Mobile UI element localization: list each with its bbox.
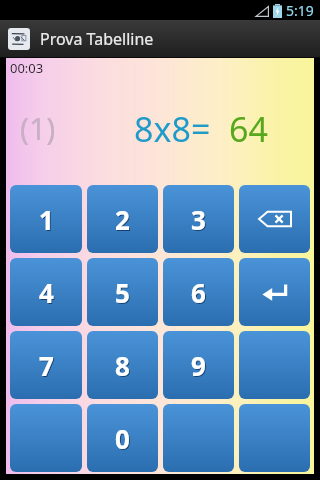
staticText: 7	[39, 348, 54, 383]
button[interactable]: Blank key	[10, 404, 82, 472]
staticText: 0	[115, 421, 130, 456]
button[interactable]: 8	[87, 331, 158, 399]
button[interactable]: 6	[163, 258, 234, 326]
staticText: 5	[115, 275, 130, 310]
staticText: 2	[115, 202, 130, 237]
staticText: 6	[192, 276, 207, 311]
button[interactable]: 5	[87, 258, 158, 326]
staticText: 9	[192, 349, 207, 384]
staticText: 00:03	[10, 59, 44, 77]
staticText: 5	[116, 276, 131, 311]
staticText: 8	[115, 348, 130, 383]
staticText: 4	[40, 276, 55, 311]
button[interactable]: 9	[163, 331, 234, 399]
button[interactable]: 1	[10, 185, 82, 253]
staticText: 6	[191, 275, 206, 310]
staticText: 8x8=	[134, 106, 211, 152]
staticText: 3	[192, 203, 207, 238]
staticText: (1)	[20, 108, 56, 149]
staticText: 5:19	[286, 1, 314, 20]
staticText: 2	[116, 203, 131, 238]
staticText: Prova Tabelline	[40, 28, 154, 50]
button[interactable]: 7	[10, 331, 82, 399]
staticText: 1	[39, 202, 54, 237]
button[interactable]: 4	[10, 258, 82, 326]
staticText: 4	[39, 275, 54, 310]
staticText: 64	[229, 106, 268, 152]
button[interactable]: Blank key	[163, 404, 234, 472]
button[interactable]: Delete	[239, 185, 310, 253]
button[interactable]: 0	[87, 404, 158, 472]
button[interactable]: 2	[87, 185, 158, 253]
staticText: 0	[116, 422, 131, 457]
button[interactable]: Blank key	[239, 331, 310, 399]
staticText: 1	[40, 203, 55, 238]
staticText: 3	[191, 202, 206, 237]
staticText: 8	[116, 349, 131, 384]
button[interactable]: 3	[163, 185, 234, 253]
button[interactable]: Enter	[239, 258, 310, 326]
staticText: 7	[40, 349, 55, 384]
button[interactable]: Blank key	[239, 404, 310, 472]
staticText: 9	[191, 348, 206, 383]
